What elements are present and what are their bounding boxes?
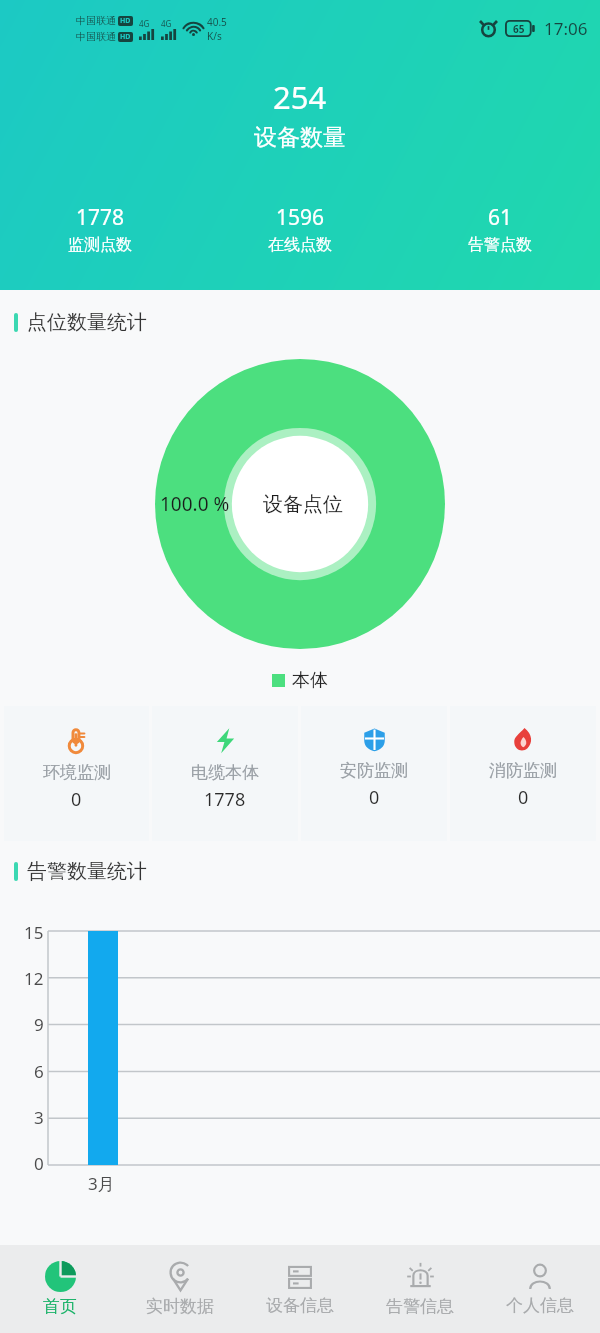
staticText: HD (120, 32, 131, 42)
staticText: 0 (34, 1152, 44, 1175)
staticText: 1778 (76, 203, 125, 232)
staticText: 0 (71, 787, 82, 812)
staticText: 4G (139, 18, 150, 29)
staticText: 6 (34, 1060, 44, 1083)
staticText: 中国联通 (76, 30, 116, 43)
staticText: 1778 (204, 787, 246, 812)
staticText: HD (120, 16, 131, 26)
button[interactable]: 消防监测 (450, 706, 596, 841)
button[interactable]: 实时数据 (120, 1245, 240, 1333)
staticText: 消防监测 (489, 760, 557, 781)
staticText: 3月 (88, 1172, 115, 1195)
staticText: 安防监测 (340, 760, 408, 781)
button[interactable]: 设备信息 (240, 1245, 360, 1333)
staticText: 监测点数 (68, 235, 132, 255)
staticText: 3 (34, 1106, 44, 1129)
button[interactable]: 告警信息 (360, 1245, 480, 1333)
staticText: 电缆本体 (191, 762, 259, 783)
staticText: 4G (161, 18, 172, 29)
other: Battery 65 percent (505, 20, 536, 37)
staticText: 65 (513, 22, 525, 36)
staticText: 9 (34, 1013, 44, 1036)
staticText: 点位数量统计 (27, 310, 147, 335)
staticText: K/s (207, 29, 222, 43)
staticText: 0 (518, 785, 529, 810)
button[interactable]: 安防监测 (301, 706, 447, 841)
staticText: 在线点数 (268, 235, 332, 255)
button[interactable]: 首页 (0, 1245, 120, 1333)
other: Alarm (480, 20, 497, 37)
staticText: 本体 (292, 669, 328, 692)
staticText: 1596 (276, 203, 325, 232)
staticText: 首页 (43, 1296, 77, 1317)
staticText: 100.0 % (160, 491, 230, 517)
staticText: 告警数量统计 (27, 859, 147, 884)
staticText: 0 (369, 785, 380, 810)
button[interactable]: 个人信息 (480, 1245, 600, 1333)
staticText: 设备数量 (254, 123, 346, 152)
staticText: 40.5 (207, 15, 227, 29)
staticText: 15 (24, 921, 44, 944)
staticText: 告警信息 (386, 1296, 454, 1317)
staticText: 61 (488, 203, 513, 232)
button[interactable]: 电缆本体 (152, 706, 298, 841)
staticText: 环境监测 (43, 762, 111, 783)
staticText: 254 (273, 76, 327, 118)
staticText: 告警点数 (468, 235, 532, 255)
staticText: 设备信息 (266, 1295, 334, 1316)
staticText: 12 (24, 967, 44, 990)
staticText: 个人信息 (506, 1295, 574, 1316)
staticText: 中国联通 (76, 14, 116, 27)
button[interactable]: 环境监测 (4, 706, 149, 841)
staticText: 实时数据 (146, 1296, 214, 1317)
staticText: 设备点位 (263, 492, 343, 517)
staticText: 17:06 (544, 17, 588, 40)
